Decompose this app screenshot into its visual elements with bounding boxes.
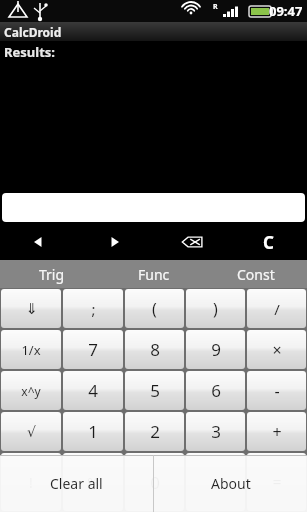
button[interactable]: 9 xyxy=(186,330,245,369)
button[interactable]: C xyxy=(230,224,307,260)
staticText: Trig xyxy=(39,265,65,284)
staticText: 7 xyxy=(88,338,98,361)
button[interactable]: Backspace xyxy=(153,224,230,260)
staticText: 0 xyxy=(150,471,160,494)
staticText: 09:47 xyxy=(269,2,303,20)
staticText: x^y xyxy=(21,383,41,399)
staticText: 1/x xyxy=(21,341,41,359)
button[interactable] xyxy=(2,193,305,222)
button[interactable]: ( xyxy=(125,289,184,328)
staticText: R xyxy=(213,2,218,12)
button[interactable]: . xyxy=(186,453,245,511)
button[interactable]: Move right xyxy=(76,224,153,260)
staticText: + xyxy=(272,421,282,443)
staticText: / xyxy=(274,299,280,319)
staticText: . xyxy=(213,471,218,494)
button[interactable]: Const xyxy=(205,260,307,288)
staticText: 1 xyxy=(88,420,98,443)
staticText: 9 xyxy=(211,338,221,361)
button[interactable]: ! xyxy=(1,453,61,511)
staticText: 8 xyxy=(150,338,160,361)
staticText: 5 xyxy=(150,379,160,402)
button[interactable]: Trig xyxy=(0,260,103,288)
staticText: Clear all xyxy=(50,474,103,493)
staticText: 6 xyxy=(211,379,221,402)
staticText: 2 xyxy=(150,420,160,443)
staticText: ( xyxy=(152,298,157,320)
button[interactable]: x^y xyxy=(1,371,61,410)
button[interactable]: - xyxy=(247,371,306,410)
staticText: ; xyxy=(91,299,96,319)
button[interactable]: × xyxy=(247,330,306,369)
button[interactable]: 1 xyxy=(63,412,123,451)
staticText: About xyxy=(211,474,251,493)
button[interactable]: ⇓ xyxy=(1,289,61,328)
button[interactable]: √ xyxy=(1,412,61,451)
button[interactable]: 1/x xyxy=(1,330,61,369)
staticText: CalcDroid xyxy=(4,24,62,40)
button[interactable]: Func xyxy=(103,260,205,288)
button[interactable]: = xyxy=(247,453,306,511)
staticText: % xyxy=(87,473,99,492)
button[interactable]: % xyxy=(63,453,123,511)
staticText: ⇓ xyxy=(25,300,38,317)
staticText: √ xyxy=(27,424,36,440)
staticText: Const xyxy=(237,265,275,284)
staticText: × xyxy=(272,339,282,361)
button[interactable]: 3 xyxy=(186,412,245,451)
button[interactable]: Move left xyxy=(0,224,76,260)
staticText: ) xyxy=(213,298,218,320)
button[interactable]: ) xyxy=(186,289,245,328)
button[interactable]: 7 xyxy=(63,330,123,369)
button[interactable]: ; xyxy=(63,289,123,328)
button[interactable]: 4 xyxy=(63,371,123,410)
staticText: Results: xyxy=(4,43,55,61)
staticText: 3 xyxy=(211,420,221,443)
button[interactable]: Clear all xyxy=(0,455,153,512)
button[interactable]: 6 xyxy=(186,371,245,410)
button[interactable]: 2 xyxy=(125,412,184,451)
button[interactable]: 8 xyxy=(125,330,184,369)
staticText: Func xyxy=(138,265,170,284)
button[interactable]: 5 xyxy=(125,371,184,410)
button[interactable]: + xyxy=(247,412,306,451)
staticText: 4 xyxy=(88,379,98,402)
staticText: - xyxy=(274,380,280,402)
button[interactable]: 0 xyxy=(125,453,184,511)
button[interactable]: / xyxy=(247,289,306,328)
staticText: C xyxy=(263,231,274,254)
button[interactable]: About xyxy=(154,455,307,512)
